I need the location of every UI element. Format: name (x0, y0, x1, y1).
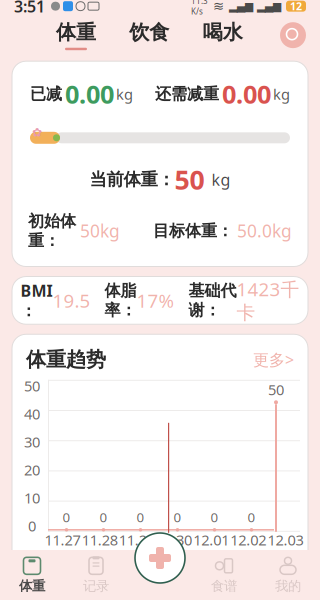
staticText: ▂▄▆ (257, 0, 281, 12)
staticText: 最低体重： (194, 559, 274, 579)
staticText: 0 (210, 508, 218, 526)
staticText: 初始体重： (28, 211, 76, 250)
staticText: 11.3 K/s (191, 0, 208, 17)
staticText: 3:51 (14, 0, 45, 17)
staticText: 体重趋势 (26, 347, 106, 372)
staticText: 食谱 (211, 578, 237, 594)
staticText: 10 (24, 488, 40, 508)
staticText: 体重 (19, 578, 45, 594)
staticText: 19.5 (52, 288, 90, 313)
staticText: 12.02 (230, 530, 266, 550)
staticText: 当前体重： (89, 169, 174, 190)
staticText: 喝水 (203, 20, 243, 45)
staticText: 40 (24, 404, 40, 424)
button[interactable]: 喝水 (203, 20, 243, 50)
staticText: 0 (136, 508, 144, 526)
button[interactable]: 体重 (56, 20, 96, 50)
button[interactable]: 记录 (64, 552, 128, 598)
staticText: 50 (24, 376, 40, 396)
staticText: 0 (247, 508, 255, 526)
staticText: 最高体重： (26, 559, 106, 579)
button[interactable]: 添加记录 (133, 531, 187, 585)
staticText: 1423千卡 (236, 276, 299, 324)
staticText: 还需减重 (155, 84, 219, 104)
staticText: 12 (290, 0, 302, 13)
staticText: 17% (136, 288, 174, 313)
staticText: 更多> (253, 349, 294, 370)
staticText: 饮食 (129, 20, 169, 45)
staticText: 12.01 (193, 530, 229, 550)
staticText: 11.30 (156, 530, 192, 550)
button[interactable]: 搜索 (276, 18, 310, 52)
staticText: 目标体重： (153, 221, 233, 241)
button[interactable]: 更多> (253, 349, 294, 370)
staticText: 0 (99, 508, 107, 526)
staticText: 0 (62, 508, 70, 526)
staticText: 我的 (275, 578, 301, 594)
staticText: 50 (174, 162, 204, 197)
staticText: 0.00 (65, 77, 114, 111)
staticText: 50 (268, 380, 284, 399)
staticText: 12.03 (267, 530, 303, 550)
staticText: 11.29 (119, 530, 155, 550)
staticText: 已减 (30, 84, 62, 104)
staticText: kg (273, 84, 290, 104)
button[interactable]: 饮食 (129, 20, 169, 50)
staticText: BMI： (20, 280, 52, 321)
staticText: kg (211, 169, 230, 190)
staticText: 体脂率： (104, 281, 136, 320)
button[interactable]: 我的 (256, 552, 320, 598)
staticText: 50.0kg (237, 219, 292, 242)
staticText: 0 (173, 508, 181, 526)
staticText: 记录 (83, 578, 109, 594)
staticText: kg (116, 84, 133, 104)
staticText: 11.27 (45, 530, 81, 550)
staticText: 体重 (56, 20, 96, 45)
staticText: ▂▄▆ (229, 0, 253, 12)
button[interactable]: 食谱 (192, 552, 256, 598)
staticText: 0.00 (222, 77, 271, 111)
staticText: 20 (24, 460, 40, 480)
staticText: ≋ (213, 0, 224, 14)
staticText: 50 (274, 558, 294, 581)
staticText: 基础代谢： (188, 281, 236, 320)
staticText: 11.28 (82, 530, 118, 550)
staticText: ✿ (32, 125, 42, 139)
staticText: 0 (28, 516, 36, 536)
staticText: 30 (24, 432, 40, 452)
button[interactable]: 体重 (0, 552, 64, 598)
staticText: 50kg (80, 219, 120, 242)
